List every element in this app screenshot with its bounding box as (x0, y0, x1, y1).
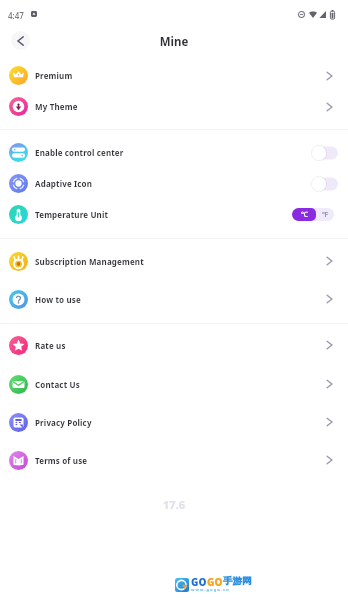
button[interactable]: Contact Us (0, 365, 348, 403)
staticText: My Theme (35, 101, 78, 112)
button[interactable]: Rate us (0, 326, 348, 364)
staticText: Subscription Management (35, 256, 144, 267)
staticText: 17.6 (0, 497, 348, 512)
staticText: w w w . g o g o . c n (191, 587, 229, 592)
button[interactable]: Temperature Unit (0, 199, 348, 230)
staticText: 手游网 (223, 575, 252, 587)
staticText: Temperature Unit (35, 209, 109, 220)
staticText: GO (191, 575, 207, 589)
staticText: Contact Us (35, 379, 80, 390)
staticText: How to use (35, 294, 81, 305)
button[interactable]: My Theme (0, 91, 348, 122)
staticText: ℃ (301, 210, 308, 220)
button[interactable]: Subscription Management (0, 242, 348, 280)
button[interactable]: Enable control center (0, 137, 348, 168)
staticText: 4:47 (8, 10, 24, 21)
staticText: Rate us (35, 340, 66, 351)
button[interactable]: ℉ (316, 208, 334, 221)
button[interactable]: Terms of use (0, 441, 348, 479)
staticText: Adaptive Icon (35, 178, 93, 189)
button[interactable]: Premium (0, 60, 348, 91)
staticText: Enable control center (35, 147, 124, 158)
staticText: Premium (35, 70, 73, 81)
button[interactable]: ℃ (292, 208, 316, 221)
button[interactable]: Privacy Policy (0, 403, 348, 441)
staticText: ℉ (322, 210, 329, 220)
button[interactable]: How to use (0, 280, 348, 318)
staticText: Privacy Policy (35, 417, 92, 428)
button[interactable]: Adaptive Icon (0, 168, 348, 199)
button[interactable]: Back (11, 31, 30, 50)
staticText: GO (207, 575, 223, 589)
staticText: Mine (0, 34, 348, 50)
staticText: Terms of use (35, 455, 88, 466)
